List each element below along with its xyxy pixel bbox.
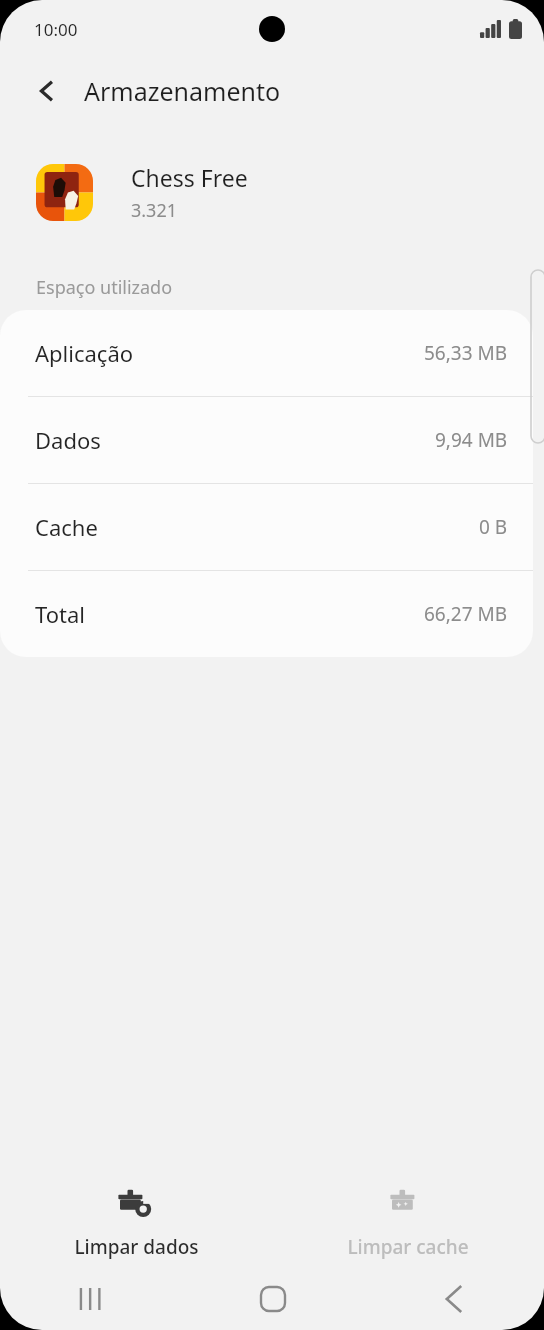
staticText: Total [35,599,85,629]
staticText: Dados [35,425,101,455]
button[interactable]: Recent apps [0,1268,182,1330]
button[interactable]: Limpar dados [0,1180,272,1268]
staticText: Armazenamento [84,74,281,108]
staticText: Cache [35,512,98,542]
button[interactable]: Dados [0,397,533,483]
staticText: 10:00 [34,18,78,41]
staticText: Limpar dados [74,1234,199,1260]
staticText: Chess Free [131,162,248,193]
button[interactable]: Back [24,67,72,115]
button[interactable]: Back [363,1268,544,1330]
staticText: 66,27 MB [424,601,508,627]
staticText: 0 B [479,514,508,540]
staticText: Aplicação [35,338,134,368]
staticText: 3.321 [131,198,178,223]
button[interactable]: Aplicação [0,310,533,396]
staticText: 56,33 MB [424,340,508,366]
staticText: 9,94 MB [435,427,508,453]
staticText: Limpar cache [347,1234,469,1260]
button[interactable]: Cache [0,484,533,570]
button[interactable]: Total [0,571,533,657]
button[interactable]: Home [182,1268,363,1330]
staticText: Espaço utilizado [36,275,173,300]
button[interactable]: Limpar cache [272,1180,544,1268]
